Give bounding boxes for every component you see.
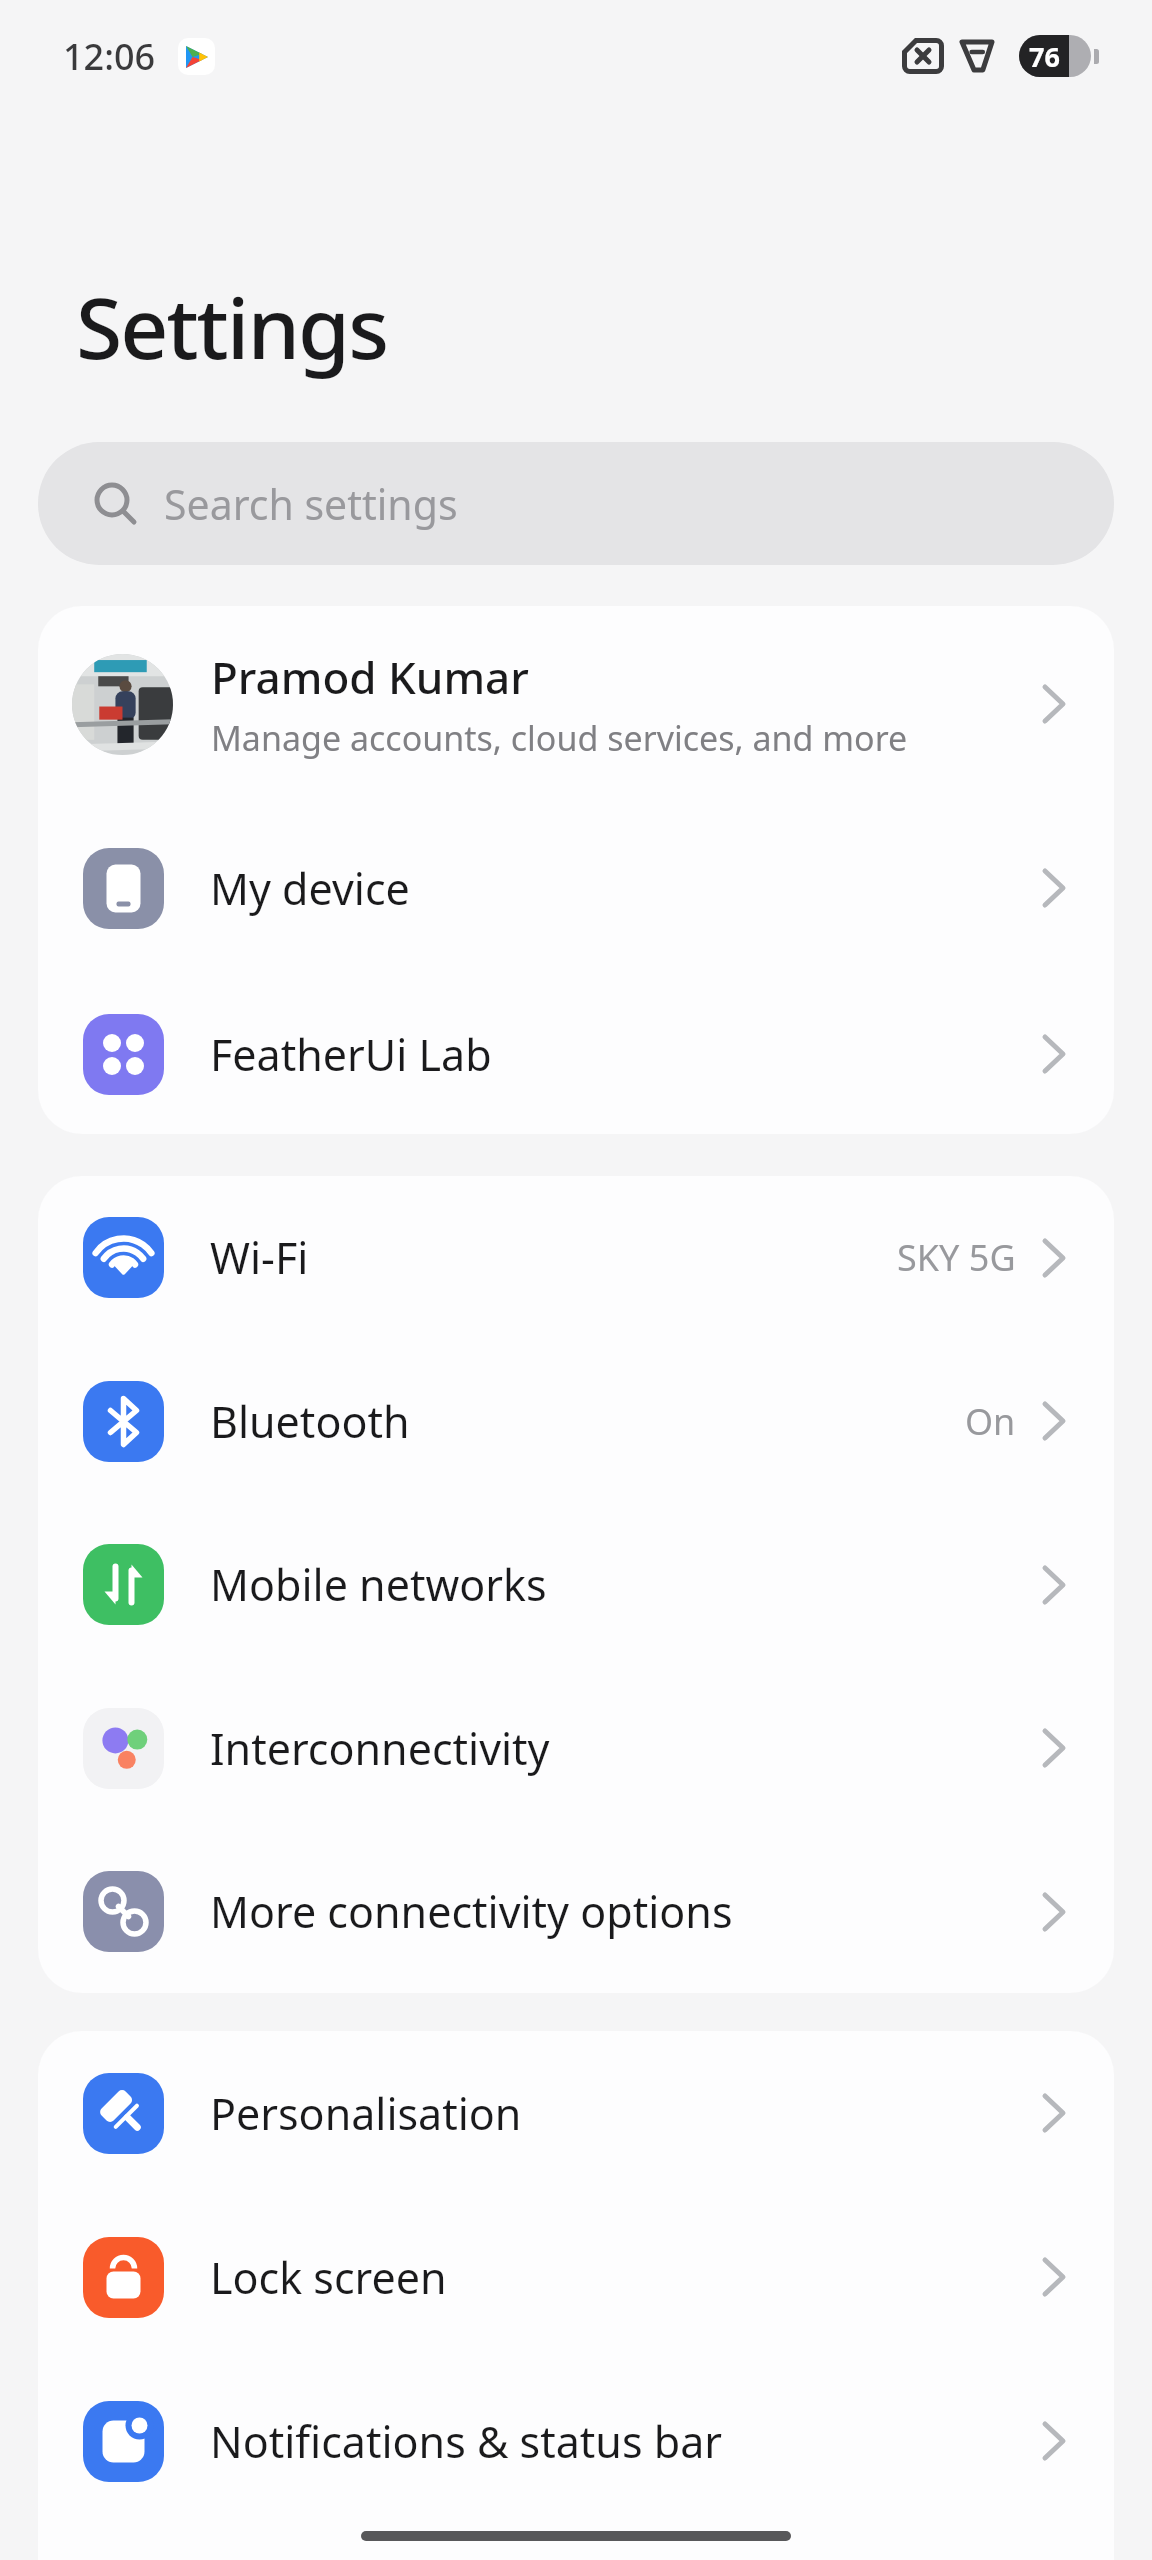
staticText: Manage accounts, cloud services, and mor…: [211, 715, 908, 761]
button[interactable]: Search settings: [38, 442, 1114, 565]
button[interactable]: More connectivity options: [38, 1830, 1114, 1993]
staticText: Search settings: [164, 476, 458, 532]
staticText: 12:06: [63, 32, 156, 80]
staticText: Personalisation: [210, 2084, 522, 2143]
staticText: On: [965, 1397, 1016, 1446]
staticText: Pramod Kumar: [211, 647, 529, 707]
button[interactable]: My device: [38, 802, 1114, 974]
button[interactable]: Interconnectivity: [38, 1666, 1114, 1830]
button[interactable]: Personalisation: [38, 2031, 1114, 2195]
staticText: Lock screen: [210, 2248, 447, 2307]
button[interactable]: Notifications & status bar: [38, 2359, 1114, 2523]
staticText: Bluetooth: [210, 1392, 410, 1451]
staticText: Settings: [76, 269, 388, 383]
button[interactable]: Mobile networks: [38, 1503, 1114, 1666]
button[interactable]: Wi-Fi: [38, 1176, 1114, 1339]
staticText: FeatherUi Lab: [210, 1025, 492, 1084]
staticText: Interconnectivity: [210, 1719, 550, 1778]
staticText: SKY 5G: [897, 1233, 1016, 1282]
button[interactable]: Bluetooth: [38, 1339, 1114, 1503]
button[interactable]: Pramod Kumar: [38, 606, 1114, 802]
button[interactable]: FeatherUi Lab: [38, 974, 1114, 1134]
staticText: Mobile networks: [210, 1555, 547, 1614]
staticText: More connectivity options: [210, 1882, 733, 1941]
staticText: Notifications & status bar: [210, 2412, 723, 2471]
staticText: Wi-Fi: [210, 1228, 309, 1287]
staticText: 76: [1029, 38, 1060, 75]
staticText: My device: [210, 859, 410, 918]
button[interactable]: Lock screen: [38, 2195, 1114, 2359]
